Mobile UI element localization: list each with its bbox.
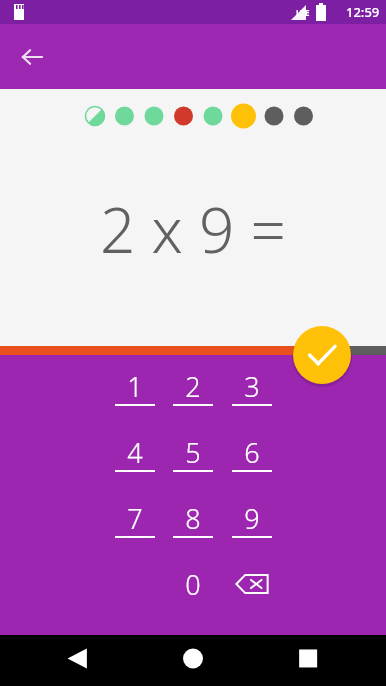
button[interactable]: Recent apps <box>257 635 386 686</box>
button[interactable]: 5 <box>164 424 222 480</box>
button[interactable]: Back <box>10 35 54 79</box>
button[interactable]: Back <box>0 635 128 686</box>
button[interactable]: 8 <box>164 490 222 546</box>
staticText: 8 <box>185 500 201 537</box>
staticText: 12:59 <box>346 3 380 21</box>
button[interactable]: 9 <box>223 490 281 546</box>
button[interactable]: 4 <box>106 424 164 480</box>
button[interactable]: 7 <box>106 490 164 546</box>
staticText: 9 <box>244 500 260 537</box>
button[interactable]: 0 <box>164 556 222 612</box>
button[interactable]: Home <box>128 635 257 686</box>
staticText: LTE <box>296 7 310 18</box>
staticText: 7 <box>127 500 143 537</box>
staticText: 4 <box>127 434 143 471</box>
staticText: 2 x 9 = <box>100 187 286 271</box>
staticText: 2 <box>185 368 201 405</box>
button[interactable]: 6 <box>223 424 281 480</box>
button[interactable]: 1 <box>106 358 164 414</box>
button[interactable]: Submit answer <box>291 324 353 386</box>
staticText: 3 <box>244 368 260 405</box>
staticText: 6 <box>244 434 260 471</box>
staticText: 5 <box>185 434 201 471</box>
button[interactable]: Backspace <box>223 556 281 612</box>
staticText: 0 <box>185 566 201 603</box>
staticText: 1 <box>127 368 143 405</box>
button[interactable]: 2 <box>164 358 222 414</box>
button[interactable]: 3 <box>223 358 281 414</box>
